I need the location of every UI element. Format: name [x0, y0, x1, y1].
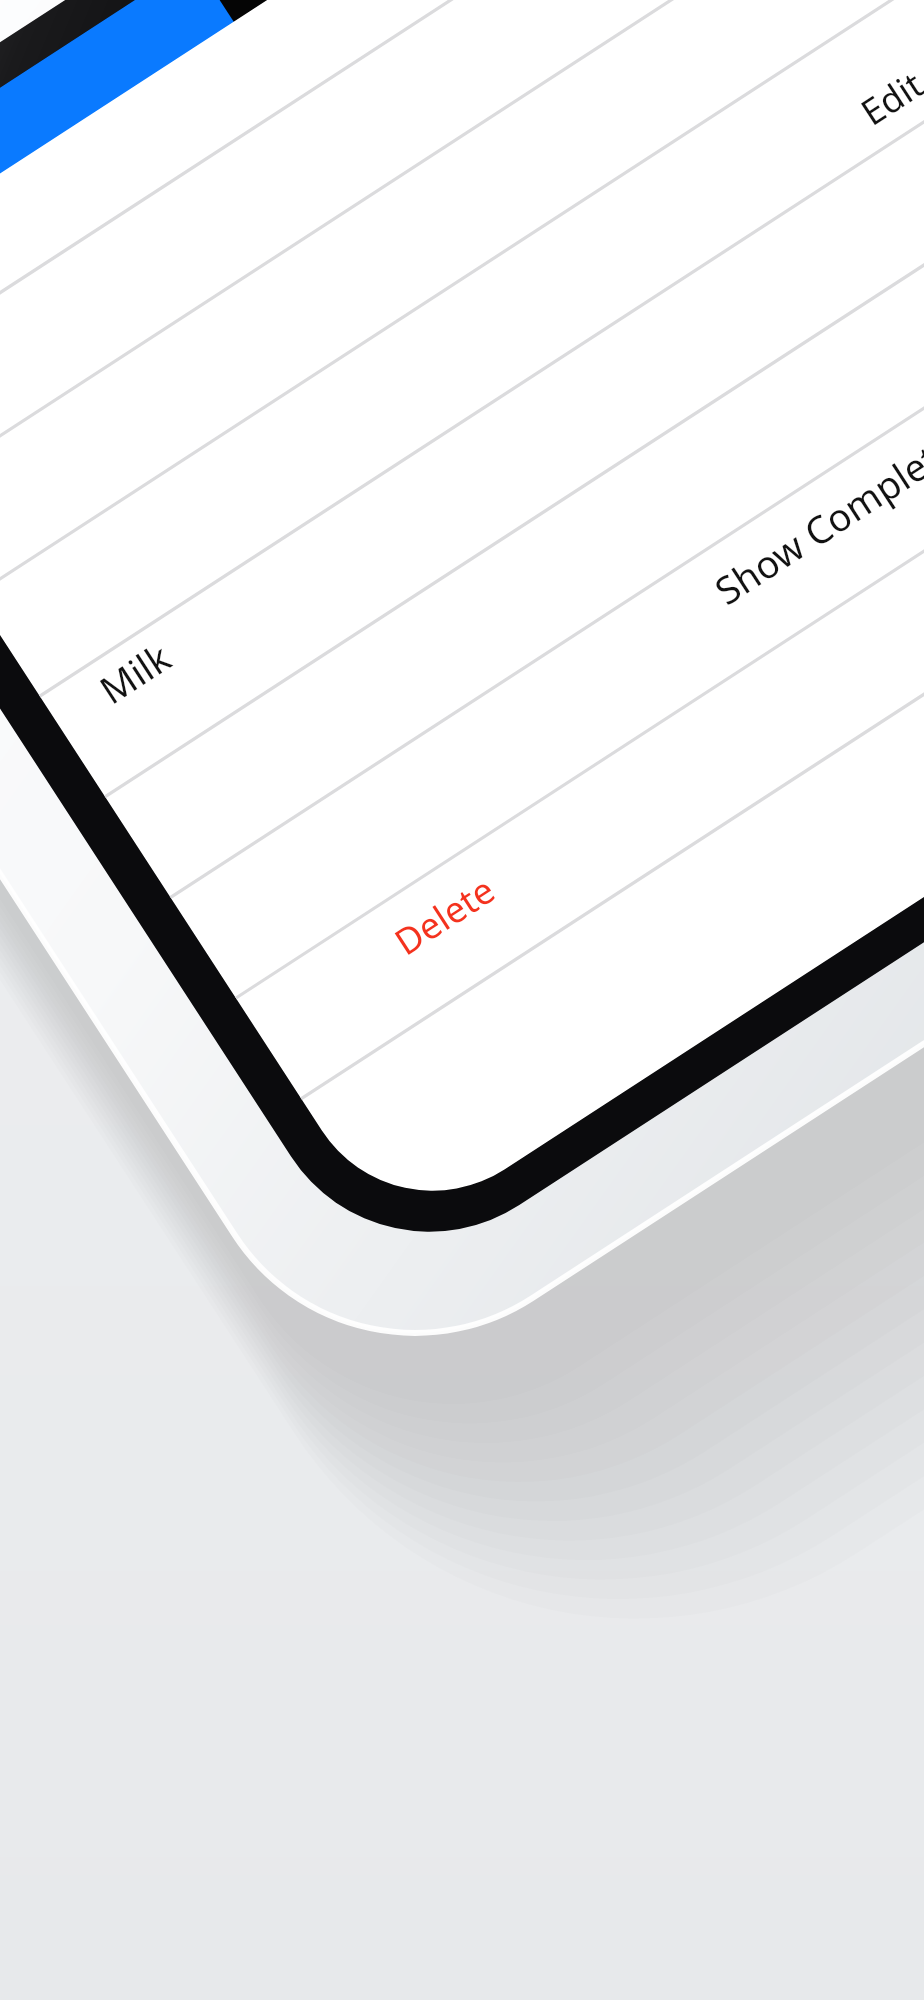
- button[interactable]: Reminders list on phone: [0, 0, 924, 2000]
